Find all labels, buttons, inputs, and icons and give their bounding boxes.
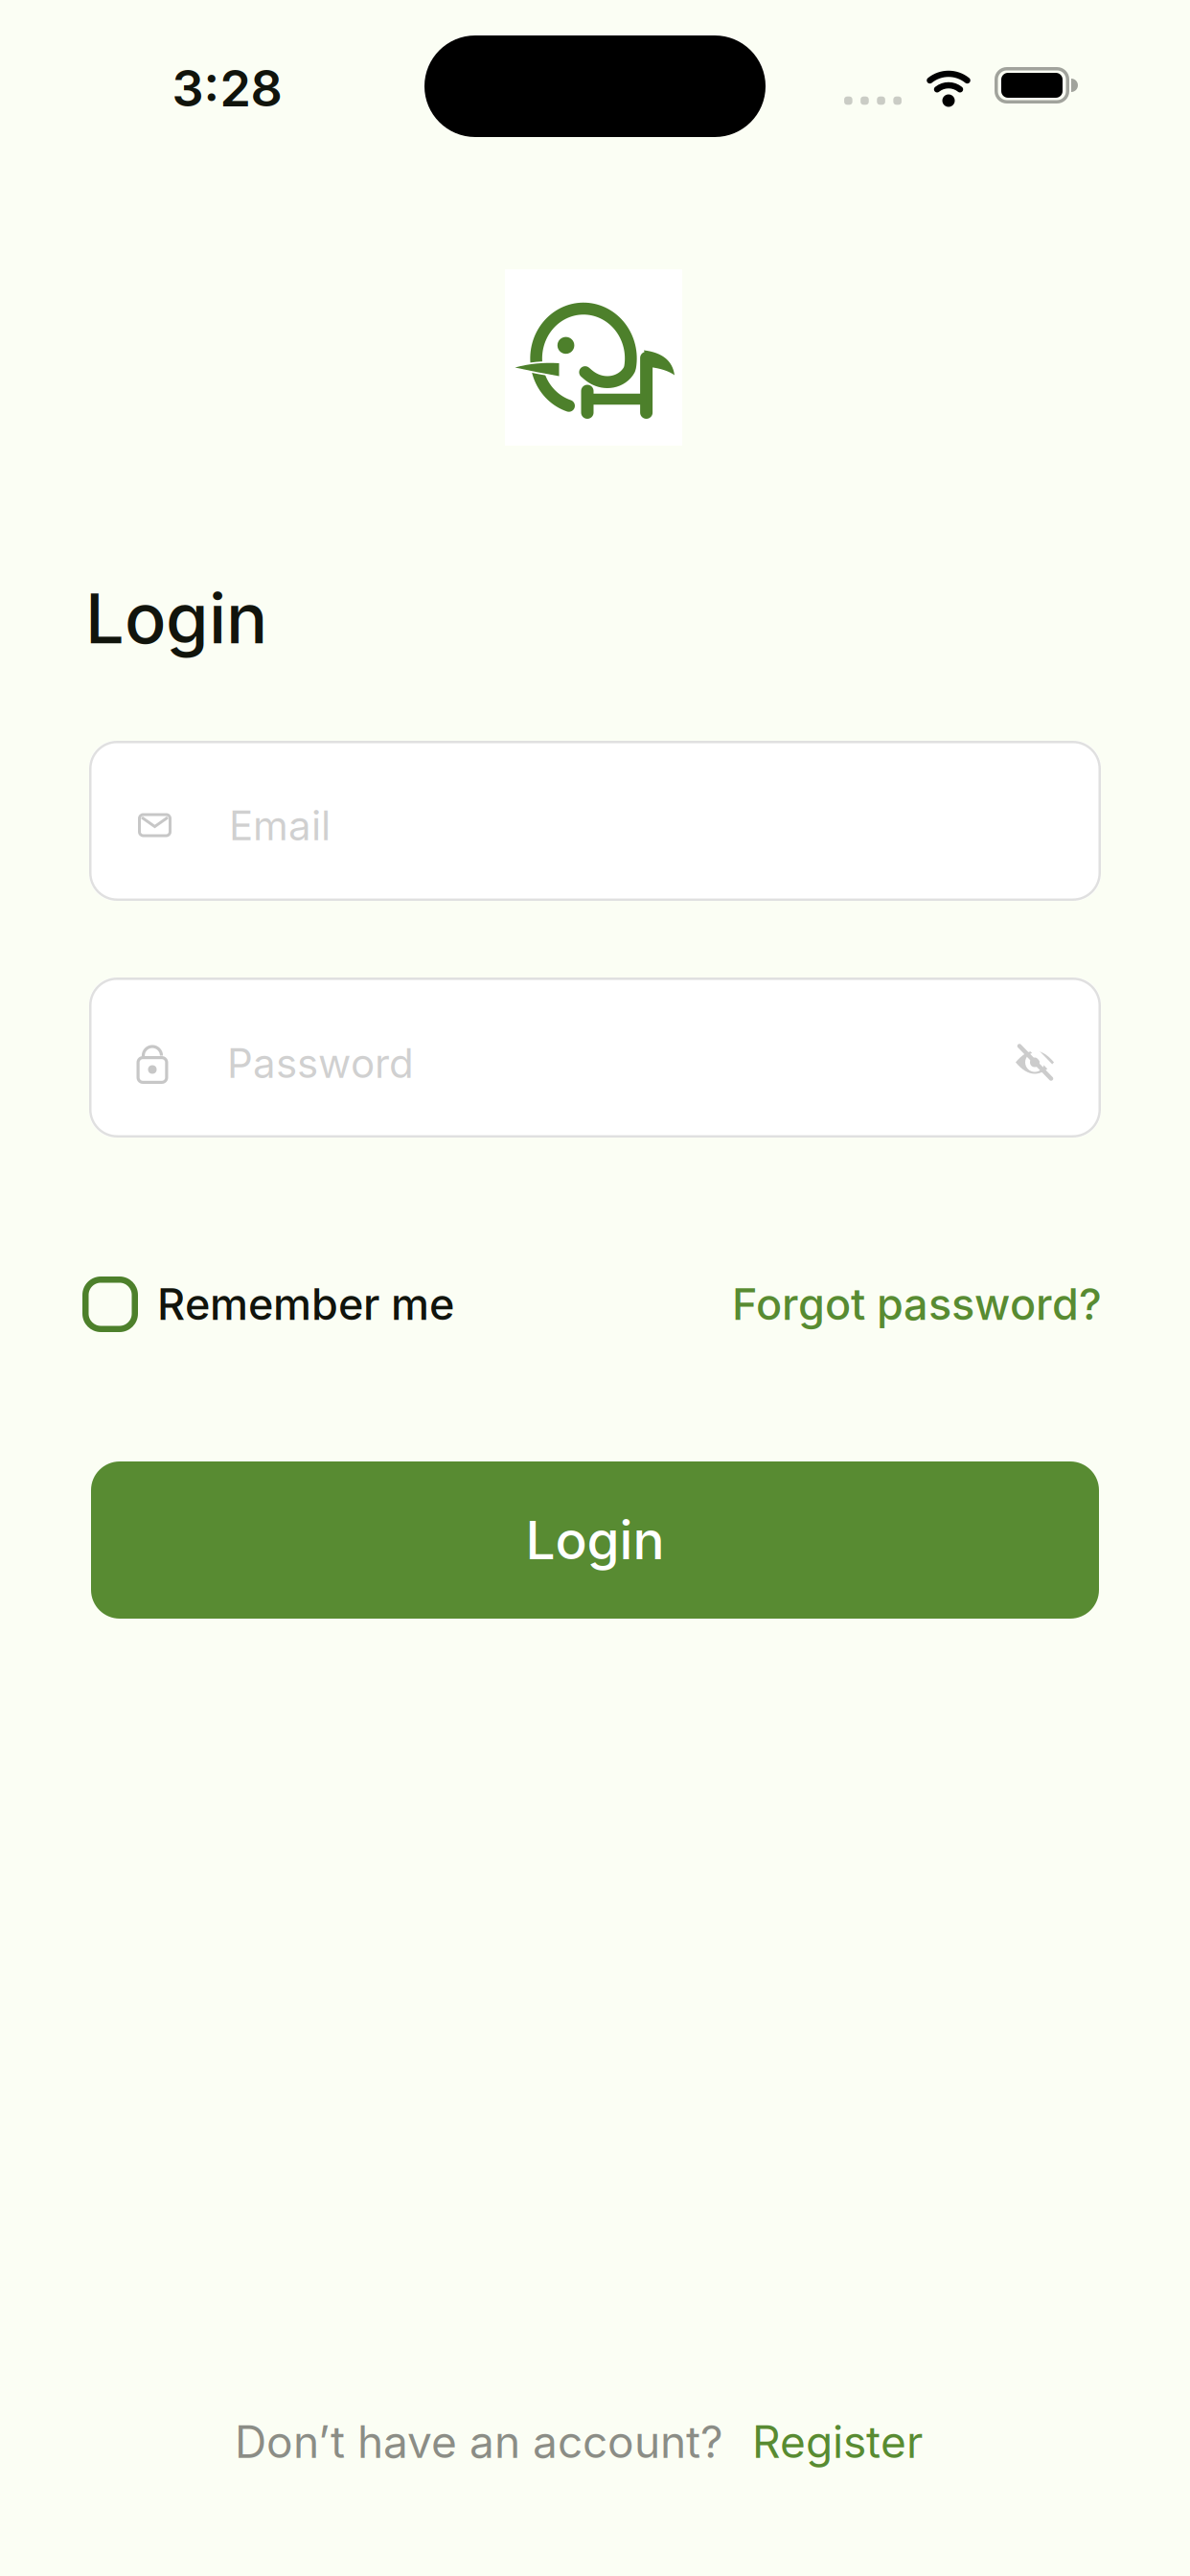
staticText: Password (227, 1040, 414, 1087)
staticText: Email (229, 802, 331, 849)
button[interactable]: Remember me (82, 1276, 454, 1332)
staticText: Forgot password? (732, 1279, 1102, 1330)
staticText: Remember me (157, 1279, 454, 1330)
staticText: Login (526, 1509, 664, 1571)
staticText: Login (85, 577, 267, 659)
staticText: Don’t have an account? (235, 2416, 723, 2468)
button[interactable]: Show password (1015, 1046, 1055, 1081)
button[interactable]: Login (91, 1461, 1099, 1619)
staticText: 3:28 (172, 59, 282, 117)
staticText: Register (752, 2416, 923, 2468)
button[interactable]: Register (752, 2416, 923, 2468)
button[interactable]: Forgot password? (732, 1279, 1102, 1330)
